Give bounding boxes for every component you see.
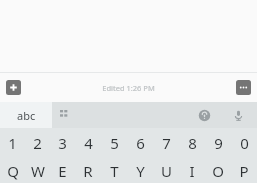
staticText: 6 [136, 133, 145, 153]
staticText: 1 [8, 133, 17, 153]
button[interactable]: Add content [6, 80, 21, 95]
button[interactable]: 6 [127, 128, 153, 158]
button[interactable]: W [25, 158, 50, 183]
button[interactable]: Symbols keyboard [52, 102, 78, 128]
button[interactable]: O [205, 158, 231, 183]
staticText: 0 [240, 133, 249, 153]
button[interactable]: 3 [50, 128, 75, 158]
staticText: Q [7, 161, 19, 181]
staticText: U [161, 161, 172, 181]
button[interactable]: 8 [179, 128, 205, 158]
button[interactable]: 5 [101, 128, 127, 158]
button[interactable]: P [231, 158, 257, 183]
button[interactable]: I [179, 158, 205, 183]
staticText: 9 [214, 133, 223, 153]
staticText: T [110, 161, 119, 181]
staticText: 7 [162, 133, 171, 153]
button[interactable]: T [101, 158, 127, 183]
staticText: I [189, 161, 195, 181]
button[interactable]: Help [191, 102, 217, 128]
staticText: 5 [110, 133, 119, 153]
staticText: 4 [84, 133, 93, 153]
button[interactable]: 9 [205, 128, 231, 158]
button[interactable]: R [75, 158, 101, 183]
button[interactable]: 2 [25, 128, 50, 158]
staticText: E [58, 161, 67, 181]
staticText: W [31, 161, 45, 181]
button[interactable]: abc [0, 102, 52, 128]
staticText: O [212, 161, 224, 181]
button[interactable]: 7 [153, 128, 179, 158]
button[interactable]: Y [127, 158, 153, 183]
staticText: abc [17, 108, 36, 123]
staticText: 8 [188, 133, 197, 153]
staticText: 2 [33, 133, 42, 153]
staticText: Edited 1:26 PM [102, 83, 155, 93]
button[interactable]: More options [236, 80, 251, 95]
button[interactable]: 0 [231, 128, 257, 158]
staticText: 3 [58, 133, 67, 153]
button[interactable]: 1 [0, 128, 25, 158]
staticText: R [83, 161, 93, 181]
button[interactable]: E [50, 158, 75, 183]
button[interactable]: U [153, 158, 179, 183]
button[interactable]: Q [0, 158, 25, 183]
button[interactable]: 4 [75, 128, 101, 158]
staticText: Y [136, 161, 145, 181]
button[interactable]: Voice input [225, 102, 251, 128]
button[interactable]: Edited 1:26 PM [21, 73, 236, 102]
staticText: P [239, 161, 249, 181]
